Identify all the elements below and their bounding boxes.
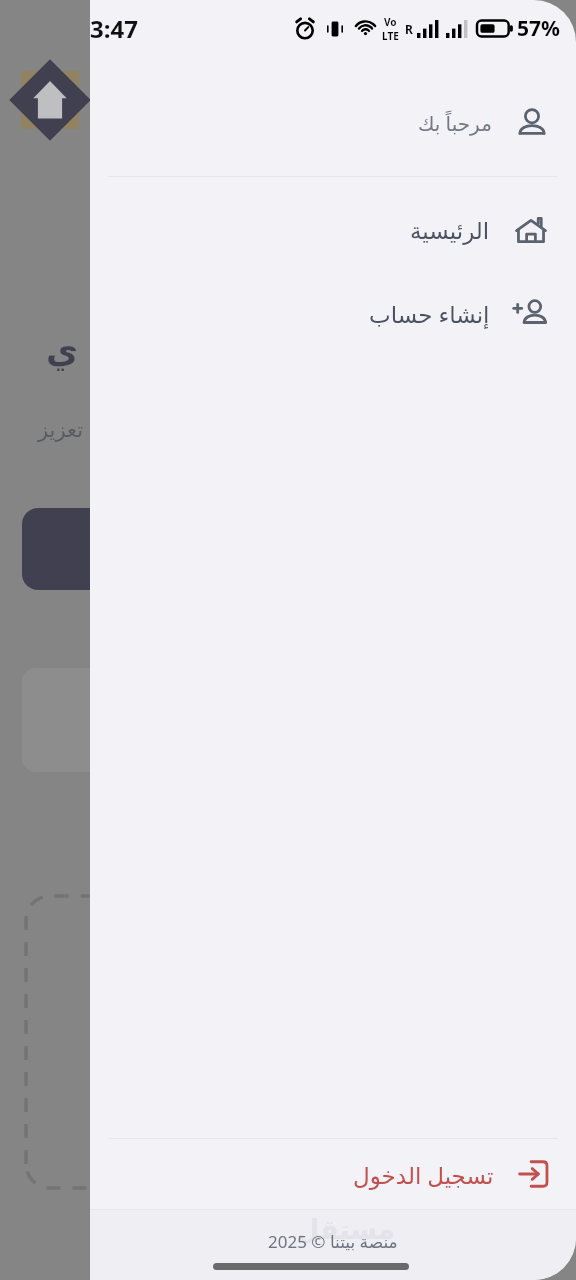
staticText: مستقل bbox=[296, 1214, 395, 1245]
staticText: مرحباً بك bbox=[418, 110, 492, 137]
staticText: 3:47 bbox=[90, 12, 138, 45]
staticText: تسجيل الدخول bbox=[353, 1159, 494, 1190]
button[interactable]: مرحباً بك bbox=[90, 86, 576, 160]
staticText: 57% bbox=[517, 14, 560, 43]
staticText: Vo bbox=[384, 15, 397, 29]
button[interactable]: الرئيسية bbox=[90, 203, 576, 259]
staticText: ي bbox=[46, 330, 79, 371]
staticText: منصة بيتنا © 2025 bbox=[268, 1230, 398, 1253]
button[interactable]: إنشاء حساب bbox=[90, 285, 576, 341]
staticText: تعزيز bbox=[38, 418, 83, 442]
staticText: LTE bbox=[382, 29, 399, 43]
staticText: إنشاء حساب bbox=[369, 298, 490, 329]
staticText: الرئيسية bbox=[410, 218, 490, 245]
staticText: R bbox=[405, 21, 413, 37]
other: Login bbox=[516, 1156, 552, 1192]
button[interactable]: تسجيل الدخول bbox=[90, 1139, 576, 1209]
